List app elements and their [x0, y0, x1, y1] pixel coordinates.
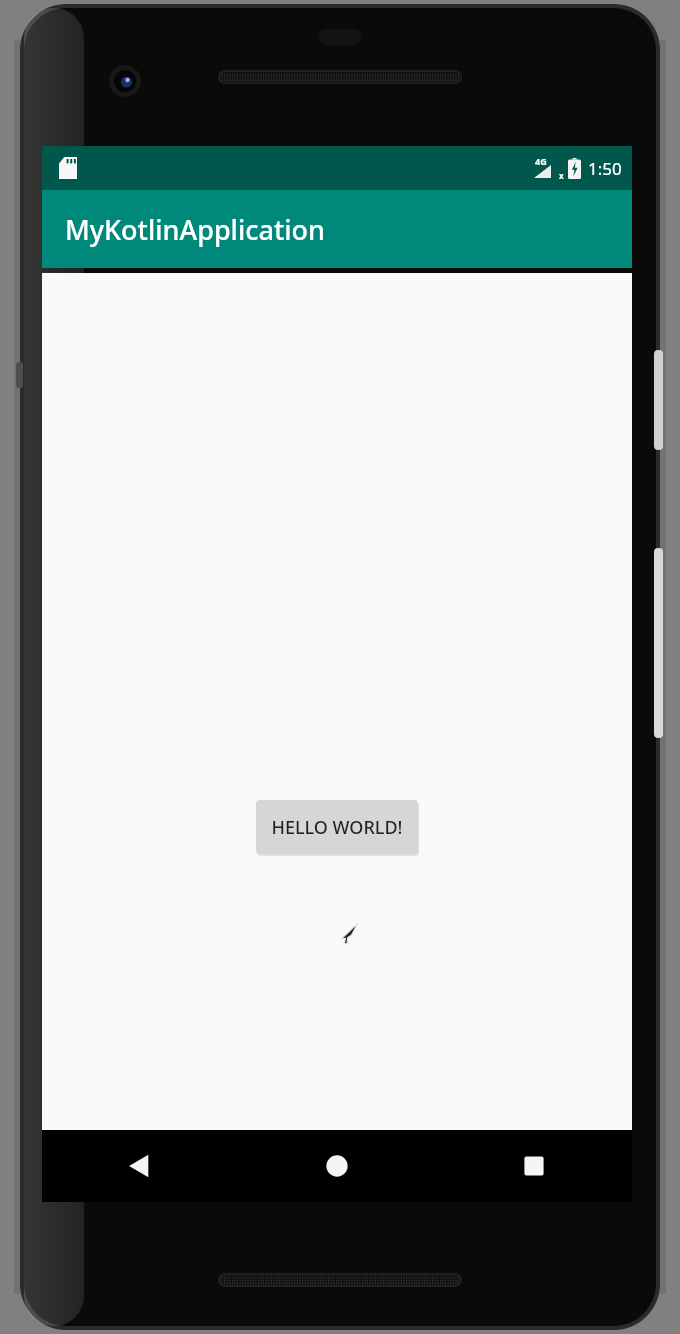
- button[interactable]: Back: [42, 1130, 238, 1202]
- staticText: 1:50: [588, 157, 622, 180]
- button[interactable]: HELLO WORLD!: [256, 800, 418, 854]
- staticText: HELLO WORLD!: [271, 815, 403, 840]
- button[interactable]: Home: [238, 1130, 435, 1202]
- staticText: MyKotlinApplication: [65, 211, 325, 248]
- button[interactable]: Recent apps: [435, 1130, 632, 1202]
- staticText: 4G: [535, 155, 547, 167]
- staticText: x: [559, 170, 564, 181]
